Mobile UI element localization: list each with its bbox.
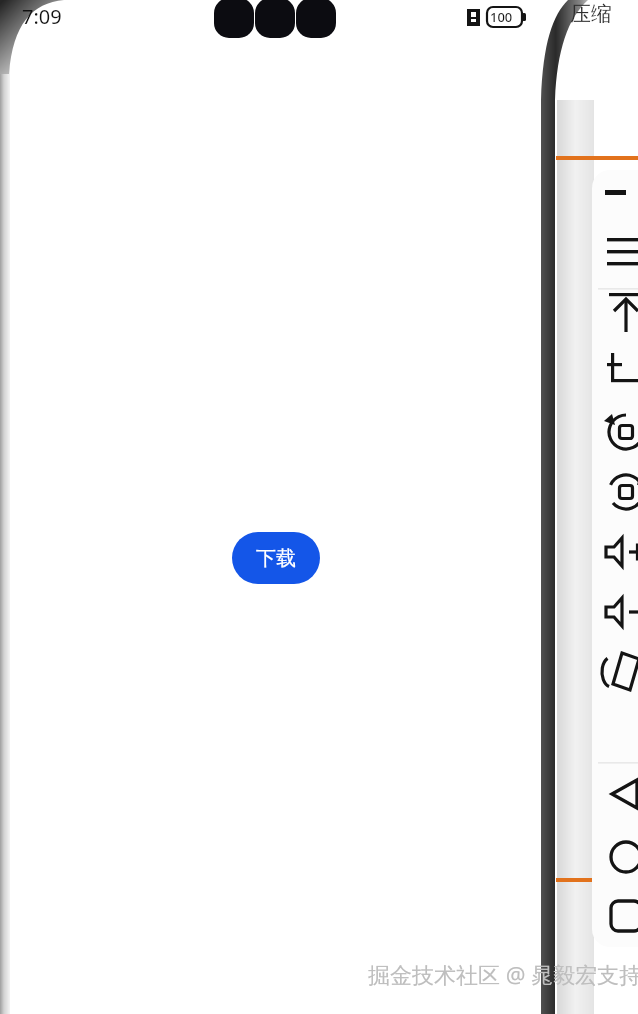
button[interactable]: Scroll to top	[598, 288, 638, 338]
staticText: 100	[490, 8, 513, 26]
button[interactable]: Back	[598, 769, 638, 819]
staticText: 下载	[256, 546, 296, 571]
staticText: 压缩	[570, 1, 612, 27]
staticText: 掘金技术社区 @ 晁毅宏支持	[368, 959, 638, 989]
button[interactable]: Volume up	[598, 527, 638, 577]
button[interactable]: Recents	[598, 905, 638, 955]
staticText: 7:09	[22, 3, 62, 30]
button[interactable]: Shake	[598, 647, 638, 697]
button[interactable]: Crop	[598, 347, 638, 397]
button[interactable]: Rotate left	[598, 407, 638, 457]
button[interactable]: Volume down	[598, 587, 638, 637]
button[interactable]: Home	[598, 832, 638, 882]
button[interactable]: Rotate right	[598, 467, 638, 517]
button[interactable]: 下载	[232, 532, 320, 584]
